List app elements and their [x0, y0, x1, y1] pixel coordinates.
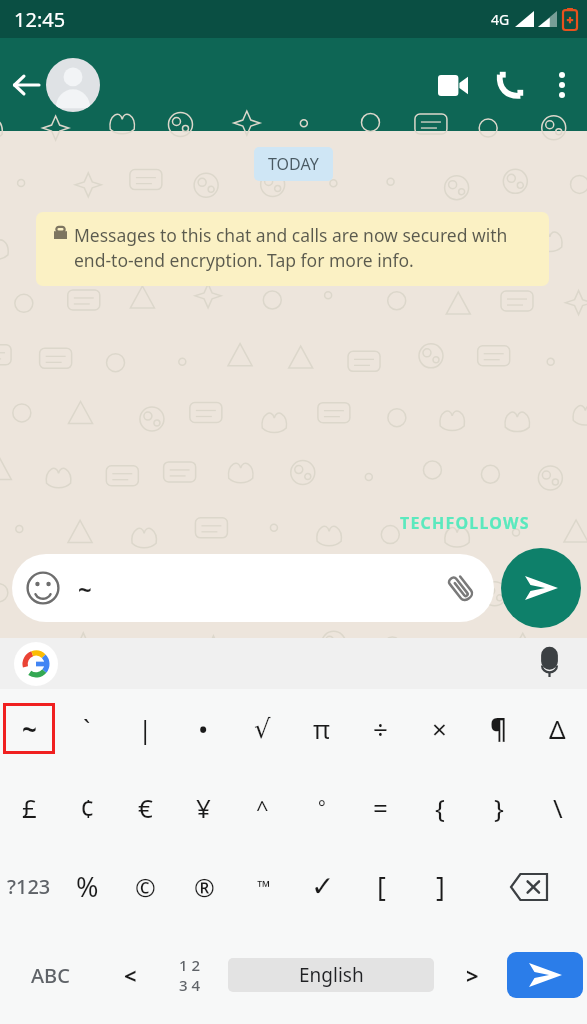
staticText: ™ — [257, 875, 271, 898]
staticText: ~ — [78, 572, 92, 605]
staticText: TECHFOLLOWS — [400, 512, 530, 534]
staticText: √ — [254, 714, 271, 744]
button[interactable]: } — [469, 768, 528, 847]
button[interactable]: • — [174, 689, 233, 768]
button[interactable]: ¥ — [174, 768, 233, 847]
button[interactable]: ABC — [0, 926, 100, 1024]
button[interactable]: × — [410, 689, 469, 768]
staticText: × — [432, 711, 447, 746]
button[interactable]: ÷ — [351, 689, 410, 768]
button[interactable]: { — [410, 768, 469, 847]
staticText: Δ — [549, 711, 566, 746]
button[interactable]: ¶ — [469, 689, 528, 768]
staticText: ^ — [256, 793, 269, 823]
button[interactable]: Numbers — [160, 926, 220, 1024]
button[interactable]: = — [351, 768, 410, 847]
staticText: { — [435, 790, 445, 825]
staticText: ¢ — [80, 790, 95, 825]
button[interactable]: Voice input — [529, 644, 569, 684]
staticText: } — [494, 790, 504, 825]
staticText: ?123 — [7, 873, 51, 900]
button[interactable]: Backspace — [470, 847, 587, 926]
button[interactable]: ?123 — [0, 847, 58, 926]
button[interactable]: ® — [175, 847, 234, 926]
staticText: • — [199, 714, 208, 744]
staticText: TODAY — [268, 153, 319, 175]
button[interactable]: < — [100, 926, 160, 1024]
button[interactable]: Send — [507, 952, 583, 998]
button[interactable]: Emoji — [12, 554, 494, 622]
button[interactable]: ™ — [234, 847, 293, 926]
button[interactable]: Δ — [528, 689, 587, 768]
staticText: ] — [436, 868, 445, 905]
staticText: Messages to this chat and calls are now … — [74, 223, 537, 273]
button[interactable]: Voice call — [481, 57, 537, 113]
button[interactable]: Google search — [14, 642, 58, 686]
button[interactable]: ✓ — [293, 847, 352, 926]
button[interactable]: ° — [292, 768, 351, 847]
staticText: ~ — [22, 711, 37, 746]
button[interactable]: π — [292, 689, 351, 768]
staticText: π — [313, 711, 330, 746]
staticText: © — [135, 870, 156, 904]
button[interactable]: Video call — [425, 57, 481, 113]
button[interactable]: > — [442, 926, 502, 1024]
button[interactable]: © — [116, 847, 175, 926]
button[interactable]: ^ — [233, 768, 292, 847]
button[interactable]: Contact photo — [46, 58, 100, 112]
button[interactable]: % — [58, 847, 116, 926]
staticText: ÷ — [373, 711, 388, 746]
staticText: > — [466, 960, 479, 990]
staticText: ABC — [31, 962, 70, 989]
staticText: £ — [22, 790, 37, 825]
staticText: 12:45 — [14, 6, 66, 33]
staticText: < — [124, 960, 137, 990]
button[interactable]: √ — [233, 689, 292, 768]
staticText: ® — [194, 870, 215, 904]
button[interactable]: | — [116, 689, 174, 768]
staticText: [ — [377, 868, 386, 905]
staticText: 4G — [491, 10, 510, 29]
button[interactable]: TODAY — [254, 147, 333, 181]
button[interactable]: ] — [411, 847, 470, 926]
button[interactable]: Attach — [442, 569, 480, 607]
button[interactable]: Messages to this chat and calls are now … — [36, 212, 549, 286]
staticText: 1 2 — [179, 955, 201, 975]
staticText: ° — [318, 795, 326, 820]
other: Emoji — [26, 571, 60, 605]
button[interactable]: ¢ — [58, 768, 116, 847]
staticText: ✓ — [311, 870, 335, 903]
button[interactable]: English — [228, 958, 434, 992]
staticText: ¶ — [490, 711, 507, 746]
staticText: \ — [553, 790, 563, 825]
staticText: ¥ — [196, 790, 211, 825]
button[interactable]: Back — [4, 63, 48, 107]
button[interactable]: £ — [0, 768, 58, 847]
button[interactable]: [ — [352, 847, 411, 926]
staticText: English — [299, 962, 364, 988]
button[interactable]: More options — [537, 60, 587, 110]
button[interactable]: Send — [501, 548, 581, 628]
button[interactable]: € — [116, 768, 174, 847]
staticText: = — [373, 790, 388, 825]
staticText: ` — [83, 711, 91, 746]
button[interactable]: ` — [58, 689, 116, 768]
button[interactable]: \ — [528, 768, 587, 847]
staticText: % — [76, 868, 99, 905]
staticText: 3 4 — [179, 975, 201, 995]
button[interactable]: ~ — [6, 706, 52, 751]
staticText: | — [138, 711, 153, 746]
staticText: € — [138, 790, 153, 825]
